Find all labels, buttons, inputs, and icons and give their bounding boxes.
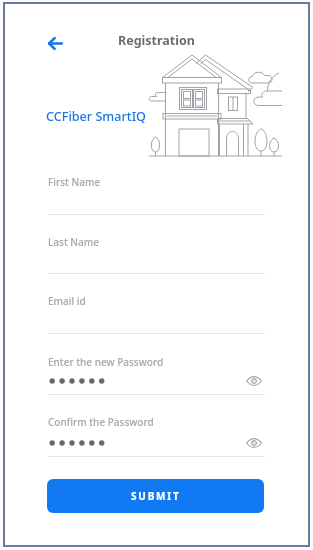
staticText: Email id [48,294,86,308]
staticText: First Name [48,175,101,189]
staticText: Confirm the Password [48,415,154,429]
button[interactable]: Show password [244,371,264,391]
staticText: SUBMIT [131,489,181,503]
staticText: Last Name [48,235,100,249]
staticText: Enter the new Password [48,355,164,369]
staticText: CCFiber SmartIQ [46,108,146,125]
button[interactable]: SUBMIT [47,479,264,513]
staticText: Registration [118,32,195,49]
button[interactable]: Show password [244,433,264,453]
button[interactable]: Back [42,30,68,56]
